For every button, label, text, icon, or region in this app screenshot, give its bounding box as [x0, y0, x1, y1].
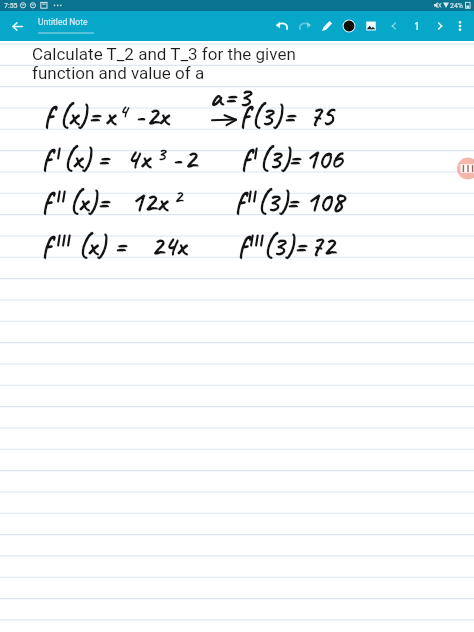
staticText: 4: [126, 141, 139, 176]
staticText: (3): [259, 141, 291, 176]
staticText: =: [288, 141, 301, 176]
button[interactable]: Colour: [339, 11, 359, 41]
staticText: a: [210, 79, 223, 114]
staticText: 3: [238, 79, 251, 114]
staticText: x: [140, 141, 150, 176]
button[interactable]: Previous page: [384, 11, 404, 41]
staticText: 2: [174, 184, 183, 208]
button[interactable]: Next page: [430, 11, 450, 41]
staticText: 4: [119, 99, 128, 123]
staticText: 24x: [151, 228, 186, 263]
staticText: 24%: [450, 2, 463, 10]
staticText: 12: [131, 184, 157, 219]
staticText: =: [286, 184, 299, 219]
staticText: =: [97, 141, 110, 176]
staticText: (3): [263, 228, 295, 263]
staticText: -: [135, 98, 145, 133]
staticText: (3): [257, 184, 289, 219]
staticText: f: [240, 98, 249, 133]
button[interactable]: Pen: [317, 11, 337, 41]
button[interactable]: Back: [5, 11, 30, 41]
staticText: =: [88, 98, 101, 133]
staticText: =: [97, 184, 110, 219]
staticText: (x): [59, 98, 88, 133]
staticText: 2: [184, 141, 197, 176]
staticText: (3): [251, 98, 283, 133]
staticText: f: [238, 228, 247, 263]
staticText: 108: [306, 184, 344, 219]
staticText: (x): [69, 184, 98, 219]
staticText: f: [235, 184, 244, 219]
staticText: f: [42, 228, 51, 263]
button[interactable]: Redo: [295, 11, 315, 41]
staticText: 7:55: [4, 2, 18, 10]
staticText: =: [283, 98, 296, 133]
button[interactable]: 1: [407, 11, 427, 41]
staticText: x: [157, 184, 167, 219]
staticText: f: [42, 141, 51, 176]
button[interactable]: Undo: [272, 11, 292, 41]
staticText: Calculate T_2 and T_3 for the given func…: [32, 44, 296, 84]
staticText: 75: [309, 98, 335, 133]
staticText: f: [42, 184, 51, 219]
staticText: =: [294, 228, 307, 263]
staticText: 72: [310, 228, 336, 263]
staticText: 106: [305, 141, 343, 176]
staticText: =: [114, 228, 127, 263]
button[interactable]: Insert image: [361, 11, 381, 41]
staticText: =: [224, 79, 237, 114]
staticText: 2x: [146, 98, 169, 133]
staticText: f: [241, 141, 250, 176]
staticText: (x): [78, 228, 107, 263]
button[interactable]: Untitled Note: [38, 13, 94, 37]
button[interactable]: More options: [450, 11, 470, 41]
staticText: f: [44, 98, 53, 133]
staticText: -: [172, 141, 182, 176]
staticText: (x): [63, 141, 92, 176]
staticText: 3: [157, 142, 166, 166]
staticText: Untitled Note: [38, 17, 88, 27]
staticText: x: [105, 98, 115, 133]
staticText: 1: [414, 19, 420, 33]
